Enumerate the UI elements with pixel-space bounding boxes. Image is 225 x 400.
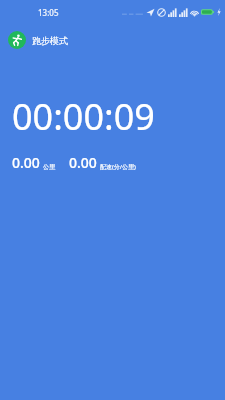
staticText: 配速(分/公里) [100, 163, 136, 171]
staticText: 跑步模式 [32, 35, 68, 46]
button[interactable]: Running mode [0, 24, 225, 56]
other: Running mode [11, 34, 23, 46]
staticText: 00:00:09 [12, 92, 155, 141]
staticText: 0.00 [69, 153, 97, 172]
staticText: 0.00 [12, 153, 40, 172]
staticText: 13:05 [38, 7, 59, 18]
staticText: 公里 [43, 163, 55, 171]
